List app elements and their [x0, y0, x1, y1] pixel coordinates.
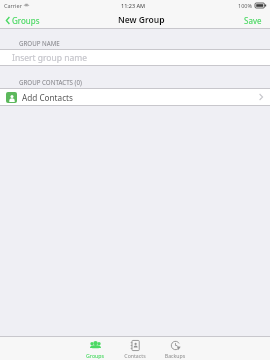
staticText: Carrier: [4, 2, 22, 9]
button[interactable]: Save: [242, 13, 264, 28]
staticText: New Group: [118, 14, 165, 26]
staticText: Save: [244, 15, 262, 26]
button[interactable]: Backups: [155, 337, 195, 360]
staticText: Backups: [155, 352, 195, 359]
button[interactable]: Groups: [75, 337, 115, 360]
staticText: 11:23 AM: [121, 2, 146, 9]
staticText: Groups: [75, 352, 115, 359]
staticText: GROUP CONTACTS (0): [19, 78, 82, 86]
button[interactable]: Add Contacts: [0, 89, 270, 105]
staticText: Groups: [12, 15, 40, 26]
staticText: GROUP NAME: [19, 39, 60, 47]
button[interactable]: Contacts: [115, 337, 155, 360]
staticText: Add Contacts: [22, 92, 73, 103]
staticText: 100%: [238, 2, 253, 9]
button[interactable]: Groups: [4, 13, 42, 28]
staticText: Contacts: [115, 352, 155, 359]
staticText: Insert group name: [12, 52, 87, 64]
